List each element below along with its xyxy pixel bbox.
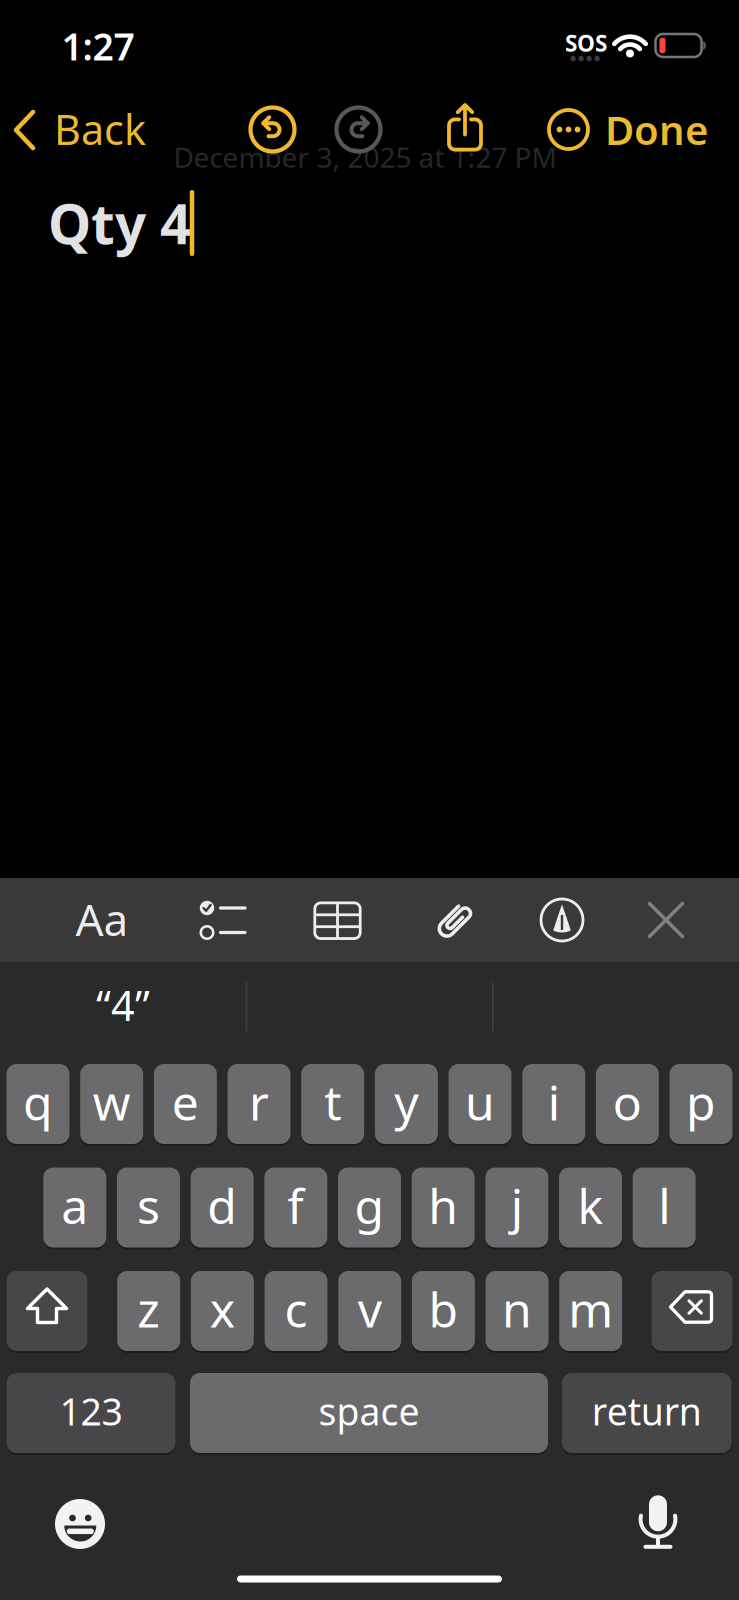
staticText: j: [511, 1174, 523, 1237]
staticText: s: [137, 1174, 160, 1237]
button[interactable]: Emoji: [52, 1496, 108, 1552]
staticText: r: [249, 1070, 269, 1134]
staticText: e: [172, 1070, 199, 1134]
staticText: u: [465, 1070, 495, 1134]
button[interactable]: Delete: [651, 1270, 732, 1352]
button[interactable]: y: [375, 1063, 438, 1145]
staticText: 123: [59, 1386, 122, 1436]
button[interactable]: More: [546, 107, 590, 151]
staticText: x: [210, 1277, 235, 1341]
button[interactable]: z: [117, 1270, 180, 1352]
button[interactable]: k: [559, 1166, 622, 1248]
button[interactable]: space: [190, 1372, 548, 1454]
button[interactable]: h: [412, 1166, 475, 1248]
button[interactable]: l: [633, 1166, 696, 1248]
button[interactable]: Done: [578, 104, 708, 154]
staticText: Done: [605, 103, 708, 156]
button[interactable]: a: [43, 1166, 106, 1248]
button[interactable]: Shift: [6, 1270, 87, 1352]
button[interactable]: Redo: [333, 104, 383, 154]
button[interactable]: Dictate: [630, 1492, 686, 1552]
staticText: SOS: [565, 28, 607, 58]
staticText: i: [548, 1070, 560, 1134]
button[interactable]: f: [264, 1166, 327, 1248]
staticText: December 3, 2025 at 1:27 PM: [173, 138, 556, 176]
button[interactable]: t: [301, 1063, 364, 1145]
button[interactable]: return: [562, 1372, 731, 1454]
staticText: Aa: [75, 890, 128, 948]
staticText: m: [568, 1277, 613, 1341]
staticText: c: [284, 1277, 307, 1341]
staticText: g: [354, 1174, 384, 1237]
button[interactable]: Format: [70, 891, 134, 947]
button[interactable]: u: [448, 1063, 511, 1145]
staticText: “4”: [96, 978, 150, 1032]
button[interactable]: Table: [307, 890, 367, 950]
staticText: l: [658, 1174, 670, 1237]
staticText: return: [592, 1386, 702, 1436]
button[interactable]: 123: [6, 1372, 175, 1454]
button[interactable]: n: [485, 1270, 548, 1352]
button[interactable]: Back: [10, 105, 150, 155]
button[interactable]: g: [338, 1166, 401, 1248]
button[interactable]: m: [559, 1270, 622, 1352]
staticText: 1:27: [61, 21, 134, 71]
staticText: h: [428, 1174, 458, 1237]
button[interactable]: Markup: [532, 890, 592, 950]
button[interactable]: b: [412, 1270, 475, 1352]
staticText: v: [358, 1277, 382, 1341]
staticText: b: [428, 1277, 458, 1341]
button[interactable]: x: [191, 1270, 254, 1352]
staticText: n: [502, 1277, 532, 1341]
button[interactable]: Dismiss keyboard: [636, 890, 696, 950]
button[interactable]: j: [485, 1166, 548, 1248]
button[interactable]: c: [264, 1270, 327, 1352]
button[interactable]: Attach: [432, 897, 478, 943]
button[interactable]: p: [669, 1063, 732, 1145]
button[interactable]: r: [227, 1063, 290, 1145]
staticText: t: [324, 1070, 341, 1134]
button[interactable]: d: [191, 1166, 254, 1248]
button[interactable]: e: [154, 1063, 217, 1145]
staticText: k: [577, 1174, 603, 1237]
staticText: space: [318, 1386, 419, 1436]
staticText: Qty 4: [48, 187, 191, 259]
button[interactable]: v: [338, 1270, 401, 1352]
button[interactable]: Undo: [247, 104, 297, 154]
staticText: y: [394, 1070, 418, 1134]
staticText: w: [93, 1070, 131, 1134]
button[interactable]: s: [117, 1166, 180, 1248]
staticText: q: [23, 1070, 53, 1134]
staticText: f: [287, 1174, 304, 1237]
staticText: z: [137, 1277, 160, 1341]
button[interactable]: q: [6, 1063, 69, 1145]
staticText: p: [686, 1070, 716, 1134]
staticText: Back: [54, 102, 146, 156]
button[interactable]: Checklist: [187, 892, 251, 948]
button[interactable]: w: [80, 1063, 143, 1145]
button[interactable]: “4”: [3, 970, 243, 1040]
staticText: a: [61, 1174, 88, 1237]
button[interactable]: Share: [440, 99, 490, 159]
button[interactable]: o: [596, 1063, 659, 1145]
staticText: d: [207, 1174, 237, 1237]
staticText: o: [613, 1070, 642, 1134]
button[interactable]: i: [522, 1063, 585, 1145]
